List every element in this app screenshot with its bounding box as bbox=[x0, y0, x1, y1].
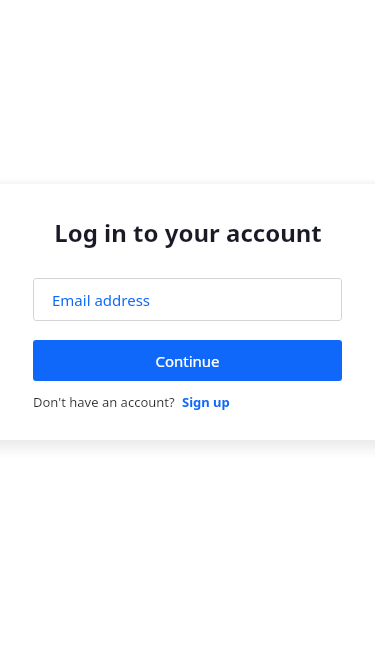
staticText: Log in to your account bbox=[54, 216, 322, 249]
staticText: Email address bbox=[52, 290, 151, 310]
staticText: Continue bbox=[155, 351, 220, 371]
button[interactable]: Continue bbox=[33, 340, 342, 381]
staticText: Don't have an account? bbox=[33, 393, 175, 411]
button[interactable]: Email address bbox=[33, 278, 342, 321]
button[interactable]: Sign up bbox=[182, 393, 230, 411]
staticText: Sign up bbox=[182, 393, 230, 411]
